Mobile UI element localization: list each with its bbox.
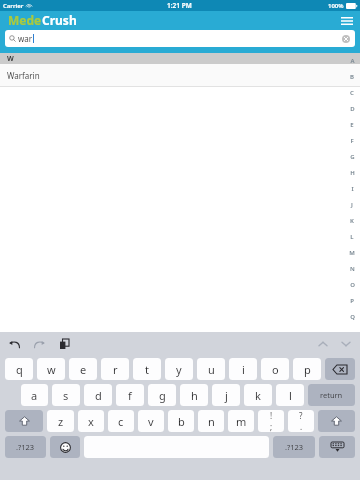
- staticText: G: [350, 153, 355, 161]
- staticText: !: [270, 410, 273, 421]
- button[interactable]: return: [308, 384, 355, 406]
- button[interactable]: c: [108, 410, 134, 432]
- button[interactable]: l: [276, 384, 304, 406]
- button[interactable]: Next: [338, 336, 354, 352]
- staticText: O: [350, 281, 355, 289]
- staticText: L: [350, 233, 354, 241]
- button[interactable]: a: [21, 384, 48, 406]
- button[interactable]: p: [293, 358, 321, 380]
- staticText: m: [236, 414, 247, 429]
- staticText: s: [63, 388, 69, 403]
- staticText: D: [350, 105, 355, 113]
- staticText: t: [145, 362, 149, 377]
- staticText: P: [350, 297, 354, 305]
- button[interactable]: Alphabet index: [344, 53, 360, 332]
- staticText: b: [178, 414, 185, 429]
- staticText: q: [16, 362, 23, 377]
- button[interactable]: r: [101, 358, 129, 380]
- button[interactable]: b: [168, 410, 194, 432]
- button[interactable]: q: [5, 358, 33, 380]
- staticText: e: [80, 362, 87, 377]
- button[interactable]: Menu: [339, 13, 355, 29]
- staticText: E: [350, 121, 354, 129]
- staticText: f: [128, 388, 132, 403]
- button[interactable]: Previous: [315, 336, 331, 352]
- staticText: .?123: [16, 442, 35, 452]
- staticText: M: [349, 249, 355, 257]
- button[interactable]: t: [133, 358, 161, 380]
- button[interactable]: s: [52, 384, 80, 406]
- staticText: B: [350, 73, 354, 81]
- staticText: w: [47, 362, 56, 377]
- staticText: r: [113, 362, 118, 377]
- staticText: W: [7, 54, 14, 64]
- staticText: i: [242, 362, 245, 377]
- button[interactable]: v: [138, 410, 164, 432]
- staticText: H: [350, 169, 355, 177]
- staticText: Q: [350, 313, 355, 321]
- staticText: p: [304, 362, 311, 377]
- button[interactable]: h: [180, 384, 208, 406]
- button[interactable]: e: [69, 358, 97, 380]
- staticText: n: [208, 414, 215, 429]
- staticText: C: [350, 89, 354, 97]
- button[interactable]: m: [228, 410, 254, 432]
- staticText: .: [300, 421, 303, 432]
- button[interactable]: Clear text: [341, 34, 351, 44]
- button[interactable]: Emoji: [50, 436, 80, 458]
- staticText: u: [208, 362, 215, 377]
- button[interactable]: Shift: [5, 410, 43, 432]
- staticText: j: [225, 388, 228, 403]
- staticText: war: [18, 33, 33, 44]
- staticText: K: [350, 217, 354, 225]
- button[interactable]: Redo: [31, 336, 47, 352]
- staticText: o: [272, 362, 279, 377]
- button[interactable]: u: [197, 358, 225, 380]
- button[interactable]: .?123: [273, 436, 315, 458]
- button[interactable]: d: [84, 384, 112, 406]
- staticText: h: [191, 388, 198, 403]
- button[interactable]: .?123: [5, 436, 46, 458]
- staticText: Carrier: [3, 2, 24, 10]
- button[interactable]: !: [258, 410, 284, 432]
- button[interactable]: Undo: [6, 336, 22, 352]
- button[interactable]: Hide keyboard: [319, 436, 355, 458]
- staticText: J: [351, 201, 353, 209]
- button[interactable]: j: [212, 384, 240, 406]
- staticText: A: [350, 57, 355, 65]
- staticText: c: [118, 414, 124, 429]
- button[interactable]: war: [5, 30, 355, 47]
- staticText: I: [351, 185, 354, 193]
- staticText: g: [159, 388, 166, 403]
- staticText: k: [255, 388, 261, 403]
- staticText: x: [88, 414, 94, 429]
- button[interactable]: o: [261, 358, 289, 380]
- button[interactable]: y: [165, 358, 193, 380]
- staticText: Mede: [8, 12, 42, 28]
- button[interactable]: Warfarin: [0, 64, 360, 86]
- button[interactable]: z: [47, 410, 74, 432]
- staticText: z: [58, 414, 64, 429]
- button[interactable]: f: [116, 384, 144, 406]
- staticText: Warfarin: [7, 70, 40, 81]
- button[interactable]: w: [37, 358, 65, 380]
- staticText: d: [95, 388, 102, 403]
- staticText: Crush: [42, 12, 77, 28]
- staticText: l: [289, 388, 292, 403]
- staticText: y: [176, 362, 182, 377]
- button[interactable]: ?: [288, 410, 314, 432]
- button[interactable]: g: [148, 384, 176, 406]
- staticText: F: [350, 137, 354, 145]
- button[interactable]: n: [198, 410, 224, 432]
- button[interactable]: k: [244, 384, 272, 406]
- staticText: ?: [299, 410, 303, 421]
- button[interactable]: x: [78, 410, 104, 432]
- button[interactable]: Paste: [56, 336, 72, 352]
- staticText: 1:21 PM: [167, 1, 192, 10]
- staticText: a: [31, 388, 38, 403]
- button[interactable]: i: [229, 358, 257, 380]
- button[interactable]: Backspace: [325, 358, 355, 380]
- button[interactable]: Shift: [318, 410, 355, 432]
- staticText: return: [320, 390, 343, 400]
